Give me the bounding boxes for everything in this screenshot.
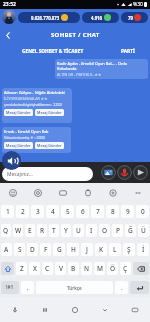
button[interactable]: S bbox=[14, 243, 25, 256]
button[interactable]: Change keyboard bbox=[120, 297, 150, 322]
staticText: İ bbox=[142, 245, 145, 254]
staticText: E bbox=[28, 226, 32, 235]
button[interactable]: I bbox=[86, 224, 97, 237]
button[interactable]: Ö bbox=[107, 262, 118, 275]
button[interactable]: !#1 bbox=[1, 281, 19, 294]
staticText: M bbox=[97, 264, 103, 273]
button[interactable]: Ü bbox=[138, 224, 149, 237]
button[interactable]: Photo bbox=[101, 165, 116, 180]
button[interactable]: Settings bbox=[100, 183, 125, 202]
button[interactable]: Ernek - Emekli Oyun Bak bbox=[2, 127, 71, 153]
staticText: G bbox=[57, 245, 62, 254]
button[interactable]: Profile bbox=[2, 10, 16, 24]
button[interactable]: 4 bbox=[46, 205, 59, 218]
staticText: 4.916 bbox=[91, 15, 103, 21]
button[interactable]: J bbox=[81, 243, 93, 256]
staticText: 1 bbox=[6, 207, 10, 216]
button[interactable]: Y bbox=[61, 224, 71, 237]
button[interactable]: 3 bbox=[31, 205, 44, 218]
button[interactable]: 8 bbox=[106, 205, 119, 218]
button[interactable]: Z bbox=[16, 262, 27, 275]
staticText: Günaünüzmüş ☀ : 2032 bbox=[4, 135, 45, 140]
button[interactable]: C bbox=[42, 262, 53, 275]
button[interactable]: M bbox=[94, 262, 105, 275]
button[interactable]: X bbox=[29, 262, 40, 275]
button[interactable]: U bbox=[73, 224, 84, 237]
button[interactable]: More options bbox=[125, 183, 150, 202]
button[interactable]: F bbox=[40, 243, 51, 256]
button[interactable]: T bbox=[49, 224, 59, 237]
button[interactable]: Back bbox=[90, 297, 120, 322]
button[interactable]: Enter bbox=[130, 281, 149, 294]
button[interactable]: Stickers bbox=[0, 183, 25, 202]
button[interactable]: 9.026.770.873 bbox=[18, 12, 80, 23]
button[interactable]: Emoji bbox=[25, 183, 50, 202]
button[interactable]: R bbox=[37, 224, 47, 237]
button[interactable]: K bbox=[95, 243, 107, 256]
button[interactable]: 7 bbox=[91, 205, 104, 218]
button[interactable]: 1 bbox=[1, 205, 14, 218]
staticText: U bbox=[76, 226, 81, 235]
staticText: 9 bbox=[126, 207, 130, 216]
button[interactable]: Mesaj Gönder bbox=[35, 109, 64, 116]
button[interactable]: L bbox=[109, 243, 121, 256]
button[interactable]: Ç bbox=[120, 262, 131, 275]
button[interactable]: 2 bbox=[16, 205, 29, 218]
button[interactable]: Microphone bbox=[117, 165, 132, 180]
button[interactable]: Mesaj Gönder bbox=[35, 142, 64, 149]
staticText: Türkçe bbox=[67, 285, 82, 291]
staticText: 0 bbox=[141, 207, 145, 216]
button[interactable]: Sound bbox=[2, 151, 21, 170]
button[interactable]: Mesaj Gönder bbox=[4, 142, 33, 149]
button[interactable]: , bbox=[21, 281, 34, 294]
button[interactable]: A bbox=[1, 243, 12, 256]
button[interactable]: D bbox=[27, 243, 38, 256]
staticText: 23:52 bbox=[3, 1, 16, 8]
button[interactable]: Voice input bbox=[0, 297, 30, 322]
button[interactable]: Home bbox=[60, 297, 90, 322]
button[interactable]: N bbox=[81, 262, 92, 275]
staticText: I bbox=[90, 226, 93, 235]
button[interactable]: Ğ bbox=[125, 224, 136, 237]
button[interactable]: O bbox=[99, 224, 110, 237]
button[interactable]: Mesaj Gönder bbox=[4, 109, 33, 116]
button[interactable]: . bbox=[115, 281, 128, 294]
staticText: 4 bbox=[51, 207, 55, 216]
button[interactable]: Send bbox=[133, 165, 148, 180]
button[interactable]: Atlexon Gülşen - Niğde Aldahdahi bbox=[2, 88, 72, 123]
button[interactable]: Recent apps bbox=[30, 297, 60, 322]
button[interactable]: Kadir Aydın - Ernebil Oyun Bal... - Ordu… bbox=[55, 59, 148, 79]
button[interactable]: Back bbox=[0, 27, 16, 43]
staticText: PARTİ bbox=[121, 48, 135, 55]
button[interactable]: B bbox=[68, 262, 79, 275]
button[interactable]: 79 bbox=[121, 12, 148, 23]
button[interactable]: GENEL SOHBET & TİCARET bbox=[0, 45, 106, 58]
staticText: V bbox=[59, 264, 63, 273]
button[interactable]: V bbox=[55, 262, 66, 275]
staticText: H bbox=[71, 245, 76, 254]
button[interactable]: Clipboard bbox=[75, 183, 100, 202]
staticText: S bbox=[18, 245, 22, 254]
button[interactable]: Ş bbox=[123, 243, 135, 256]
button[interactable]: 9 bbox=[121, 205, 134, 218]
button[interactable]: Q bbox=[1, 224, 11, 237]
button[interactable]: 0 bbox=[136, 205, 149, 218]
button[interactable]: 4.916 bbox=[82, 12, 119, 23]
button[interactable]: İ bbox=[137, 243, 149, 256]
button[interactable]: W bbox=[13, 224, 23, 237]
staticText: B bbox=[71, 264, 76, 273]
button[interactable]: Mesajınız... bbox=[2, 167, 93, 181]
button[interactable]: E bbox=[25, 224, 35, 237]
staticText: Mesaj Gönder bbox=[6, 110, 31, 115]
button[interactable]: G bbox=[53, 243, 65, 256]
button[interactable]: PARTİ bbox=[106, 45, 150, 58]
button[interactable]: Shift bbox=[1, 262, 14, 275]
button[interactable]: 6 bbox=[76, 205, 89, 218]
staticText: . bbox=[121, 284, 123, 292]
button[interactable]: H bbox=[67, 243, 79, 256]
button[interactable]: Backspace bbox=[133, 262, 149, 275]
button[interactable]: GIF bbox=[50, 183, 75, 202]
button[interactable]: 5 bbox=[61, 205, 74, 218]
button[interactable]: P bbox=[112, 224, 123, 237]
button[interactable]: Türkçe bbox=[36, 281, 113, 294]
